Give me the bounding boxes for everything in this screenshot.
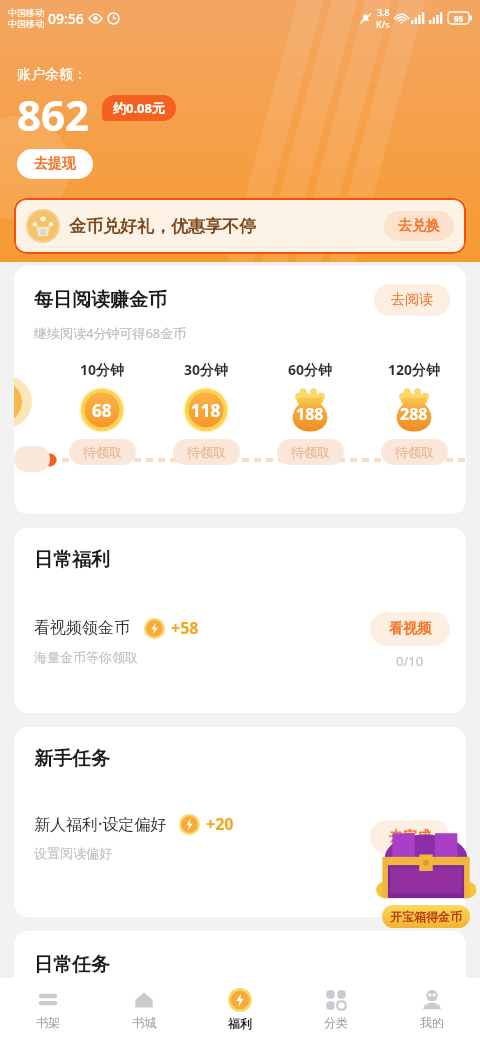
- staticText: 去完成: [389, 828, 431, 846]
- staticText: 我的: [420, 1015, 444, 1030]
- button[interactable]: 去完成: [370, 820, 450, 854]
- button[interactable]: 去阅读: [374, 284, 450, 316]
- staticText: 09:56: [48, 9, 84, 28]
- staticText: 福利: [228, 1016, 252, 1031]
- staticText: 68: [92, 399, 112, 422]
- button[interactable]: 待领取: [173, 439, 240, 465]
- staticText: 待领取: [395, 444, 434, 460]
- staticText: +58: [171, 617, 199, 639]
- staticText: 继续阅读4分钟可得68金币: [34, 324, 187, 342]
- staticText: 3.8: [377, 6, 390, 18]
- button[interactable]: 开宝箱得金币: [370, 812, 480, 930]
- staticText: 看视频: [389, 620, 431, 638]
- button[interactable]: 我的: [384, 978, 480, 1040]
- button[interactable]: 金币兑好礼，优惠享不停: [14, 198, 466, 254]
- staticText: 看视频领金币: [34, 618, 130, 638]
- staticText: 862: [17, 86, 90, 143]
- staticText: K/s: [376, 18, 390, 30]
- staticText: 中国移动: [8, 18, 44, 29]
- staticText: 288: [400, 403, 428, 425]
- button[interactable]: 书城: [96, 978, 192, 1040]
- staticText: 去阅读: [391, 291, 433, 309]
- button[interactable]: 福利: [192, 978, 288, 1040]
- staticText: 书城: [132, 1015, 156, 1030]
- staticText: 120分钟: [388, 360, 441, 379]
- staticText: 待领取: [83, 444, 122, 460]
- staticText: 188: [296, 403, 324, 425]
- staticText: 约0.08元: [113, 99, 165, 117]
- staticText: 待领取: [187, 444, 226, 460]
- button[interactable]: 待领取: [277, 439, 344, 465]
- staticText: 中国移动: [8, 7, 44, 18]
- button[interactable]: 约0.08元: [102, 95, 176, 121]
- staticText: 海量金币等你领取: [34, 649, 138, 665]
- button[interactable]: 去兑换: [384, 211, 454, 241]
- staticText: 设置阅读偏好: [34, 845, 112, 861]
- button[interactable]: 分类: [288, 978, 384, 1040]
- staticText: 10分钟: [80, 360, 125, 379]
- staticText: 待领取: [291, 444, 330, 460]
- staticText: 118: [191, 399, 221, 422]
- staticText: 去提现: [34, 155, 76, 173]
- staticText: 书架: [36, 1015, 60, 1030]
- button[interactable]: 待领取: [69, 439, 136, 465]
- staticText: +20: [206, 813, 234, 835]
- staticText: 新手任务: [34, 747, 110, 771]
- staticText: 日常福利: [34, 548, 110, 572]
- staticText: 分类: [324, 1015, 348, 1030]
- staticText: 每日阅读赚金币: [34, 288, 167, 312]
- staticText: 金币兑好礼，优惠享不停: [69, 216, 256, 237]
- staticText: 开宝箱得金币: [390, 909, 462, 924]
- button[interactable]: 去提现: [17, 149, 93, 179]
- staticText: 60分钟: [288, 360, 333, 379]
- button[interactable]: 待领取: [381, 439, 448, 465]
- staticText: 日常任务: [34, 953, 110, 977]
- staticText: 新人福利·设定偏好: [34, 813, 167, 835]
- staticText: 去兑换: [398, 217, 440, 235]
- staticText: 30分钟: [184, 360, 229, 379]
- button[interactable]: 书架: [0, 978, 96, 1040]
- staticText: 账户余额：: [17, 66, 87, 84]
- button[interactable]: 看视频: [370, 612, 450, 646]
- staticText: 0/10: [396, 652, 424, 670]
- staticText: 95: [454, 13, 464, 24]
